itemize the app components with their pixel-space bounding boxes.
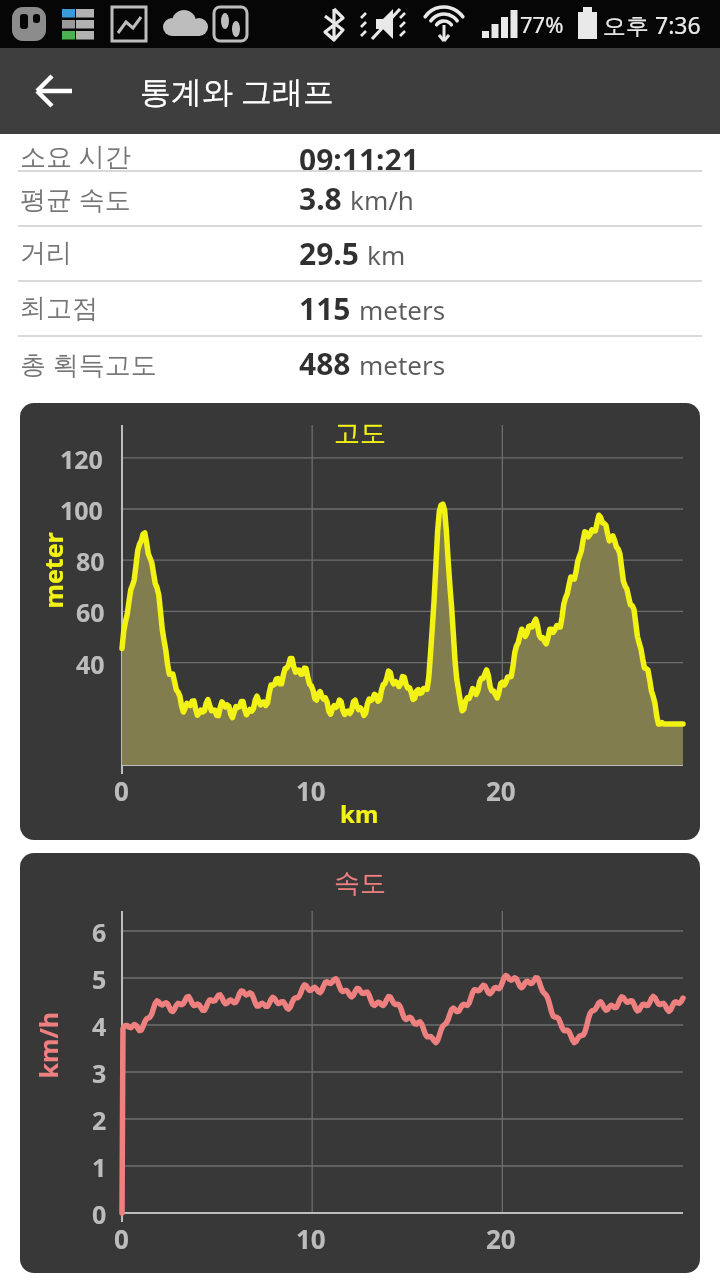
staticText: 최고점 — [20, 292, 98, 325]
staticText: 120 — [60, 442, 103, 476]
staticText: 6 — [92, 915, 107, 949]
staticText: meter — [35, 531, 69, 608]
staticText: 09:11:21 — [299, 139, 419, 175]
staticText: km — [367, 237, 406, 272]
button[interactable]: 최고점 — [0, 282, 720, 335]
staticText: 통계와 그래프 — [140, 70, 335, 112]
button[interactable]: Back — [22, 58, 88, 124]
button[interactable]: 40 — [20, 403, 700, 840]
staticText: 3 — [92, 1056, 107, 1090]
staticText: 속도 — [334, 867, 386, 900]
staticText: meters — [359, 347, 446, 382]
button[interactable]: 소요 시간 — [0, 134, 720, 170]
staticText: 488 — [299, 343, 351, 384]
staticText: 4 — [92, 1009, 107, 1043]
staticText: 거리 — [20, 237, 72, 270]
staticText: 0 — [114, 773, 129, 808]
staticText: 1 — [92, 1150, 107, 1184]
staticText: 29.5 — [299, 233, 359, 274]
staticText: 80 — [76, 544, 105, 578]
staticText: 2 — [92, 1103, 107, 1137]
staticText: km/h — [30, 1011, 64, 1078]
staticText: 오후 7:36 — [603, 9, 701, 40]
staticText: km/h — [350, 182, 414, 217]
staticText: 0 — [114, 1221, 129, 1256]
staticText: 60 — [76, 595, 105, 629]
staticText: 40 — [76, 647, 105, 681]
button[interactable]: 총 획득고도 — [0, 337, 720, 390]
button[interactable]: 거리 — [0, 227, 720, 280]
staticText: 5 — [92, 962, 107, 996]
staticText: 고도 — [334, 417, 386, 450]
button[interactable]: 0 — [20, 853, 700, 1273]
staticText: 평균 속도 — [20, 181, 131, 217]
staticText: 10 — [296, 773, 326, 808]
staticText: 0 — [92, 1197, 107, 1231]
staticText: 20 — [486, 773, 516, 808]
staticText: 100 — [60, 493, 103, 527]
staticText: km — [340, 797, 379, 830]
staticText: 10 — [296, 1221, 326, 1256]
staticText: 총 획득고도 — [20, 346, 157, 382]
staticText: 20 — [486, 1221, 516, 1256]
staticText: meters — [359, 292, 446, 327]
staticText: 115 — [299, 288, 351, 329]
staticText: 소요 시간 — [20, 138, 131, 174]
button[interactable]: 평균 속도 — [0, 172, 720, 225]
staticText: 77% — [520, 9, 564, 39]
staticText: 3.8 — [299, 178, 342, 219]
